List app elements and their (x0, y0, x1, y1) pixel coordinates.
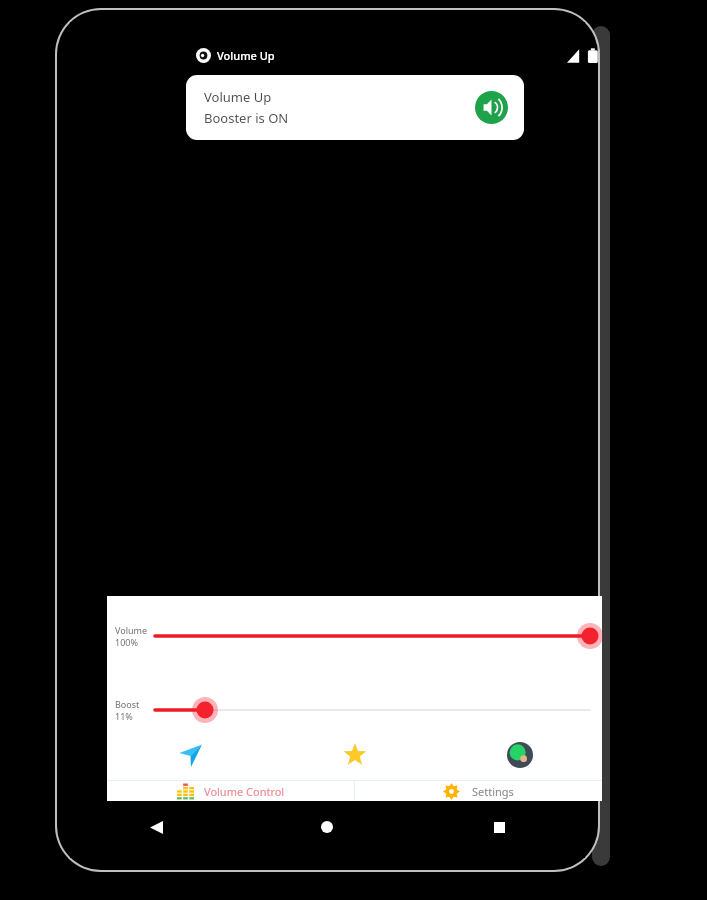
button[interactable]: Settings (355, 781, 602, 801)
staticText: Volume (115, 624, 148, 636)
button[interactable] (155, 619, 590, 653)
button[interactable]: Recent apps (482, 810, 516, 844)
other: Volume booster (475, 91, 508, 124)
staticText: Booster is ON (204, 109, 289, 127)
button[interactable]: Home (310, 810, 344, 844)
button[interactable]: Rate app (338, 738, 372, 772)
staticText: Volume Up (204, 88, 272, 106)
staticText: Volume Up (217, 48, 275, 63)
button[interactable] (155, 693, 590, 727)
button[interactable]: Volume Control (107, 781, 354, 801)
button[interactable]: Share to Telegram (173, 738, 207, 772)
staticText: 11% (115, 710, 133, 722)
staticText: Settings (472, 784, 514, 799)
staticText: Volume Control (204, 784, 285, 799)
button[interactable]: Volume Up (186, 75, 524, 140)
button[interactable]: Share to WhatsApp (503, 738, 537, 772)
button[interactable]: Back (139, 810, 173, 844)
staticText: Boost (115, 698, 140, 710)
staticText: 100% (115, 636, 138, 648)
